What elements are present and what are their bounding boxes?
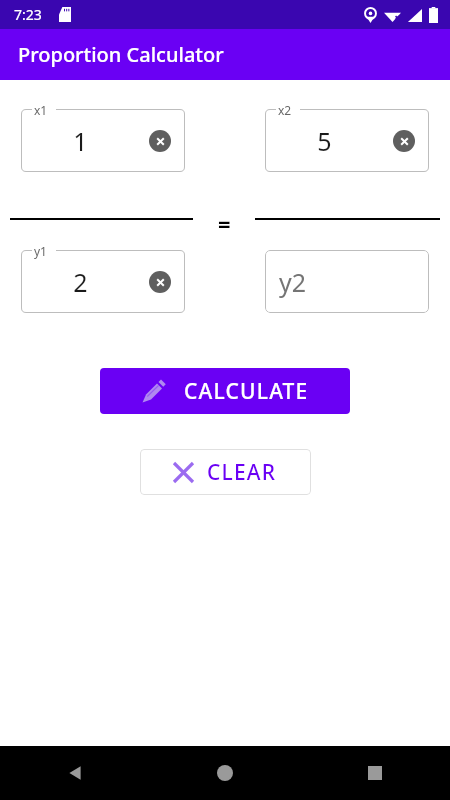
staticText: y1 bbox=[34, 243, 47, 259]
staticText: x2 bbox=[278, 102, 292, 118]
button[interactable]: x2 bbox=[265, 109, 429, 172]
button[interactable]: Clear x1 bbox=[149, 130, 171, 152]
staticText: 1 bbox=[73, 124, 88, 158]
staticText: CLEAR bbox=[207, 458, 277, 487]
staticText: Proportion Calculator bbox=[18, 41, 224, 68]
button[interactable]: y1 bbox=[21, 250, 185, 313]
staticText: 7:23 bbox=[14, 5, 42, 24]
button[interactable]: CLEAR bbox=[140, 449, 311, 495]
button[interactable]: Clear x2 bbox=[393, 130, 415, 152]
staticText: 5 bbox=[317, 124, 332, 158]
button[interactable]: Recent apps bbox=[300, 746, 450, 800]
button[interactable]: Clear y1 bbox=[149, 271, 171, 293]
staticText: x1 bbox=[34, 102, 48, 118]
staticText: = bbox=[218, 208, 231, 230]
button[interactable]: Home bbox=[150, 746, 300, 800]
button[interactable]: y2 bbox=[265, 250, 429, 313]
button[interactable]: x1 bbox=[21, 109, 185, 172]
staticText: y2 bbox=[279, 265, 307, 299]
button[interactable]: Back bbox=[0, 746, 150, 800]
staticText: CALCULATE bbox=[184, 377, 309, 406]
staticText: 2 bbox=[73, 265, 88, 299]
button[interactable]: CALCULATE bbox=[100, 368, 350, 414]
